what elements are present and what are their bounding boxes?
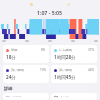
staticText: 就床時間 [12, 96, 25, 97]
staticText: 深い睡眠 [59, 68, 72, 72]
button[interactable]: Time in bed [3, 93, 49, 100]
staticText: 24分 [6, 74, 16, 80]
staticText: 浅い睡眠 [11, 68, 24, 72]
staticText: 1時間28分 [54, 54, 76, 60]
other: Time in bed [6, 96, 10, 97]
button[interactable]: 深い睡眠 [51, 65, 97, 83]
staticText: 37% [88, 48, 94, 52]
staticText: 心拍数 [60, 96, 70, 97]
staticText: 詳細 [4, 86, 13, 91]
staticText: 覚醒 [11, 48, 18, 52]
staticText: レム睡眠 [59, 48, 72, 52]
staticText: 8% [41, 48, 46, 52]
button[interactable]: 覚醒 [3, 45, 49, 63]
staticText: 44% [88, 68, 94, 72]
staticText: 18分 [6, 54, 16, 60]
staticText: 1時間45分 [54, 74, 76, 80]
staticText: 1:07 - 5:05 [37, 9, 63, 16]
button[interactable]: レム睡眠 [51, 45, 97, 63]
staticText: 10% [40, 68, 46, 72]
button[interactable]: Heart rate [51, 93, 97, 100]
button[interactable]: 浅い睡眠 [3, 65, 49, 83]
other: Heart rate [54, 96, 58, 97]
